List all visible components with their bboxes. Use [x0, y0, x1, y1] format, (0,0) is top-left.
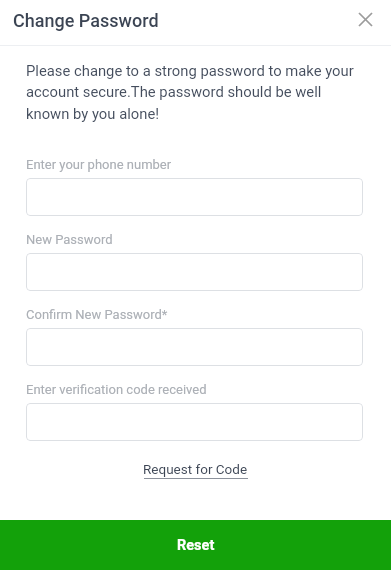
staticText: Confirm New Password*	[26, 307, 168, 322]
button[interactable]: Close	[350, 4, 380, 34]
staticText: Enter verification code received	[26, 382, 207, 397]
staticText: Change Password	[13, 10, 159, 31]
button[interactable]	[26, 328, 363, 366]
button[interactable]	[26, 403, 363, 441]
staticText: Enter your phone number	[26, 157, 172, 172]
button[interactable]	[26, 178, 363, 216]
button[interactable]: Request for Code	[142, 461, 249, 479]
staticText: Request for Code	[143, 461, 248, 477]
staticText: New Password	[26, 232, 113, 247]
button[interactable]	[26, 253, 363, 291]
staticText: Reset	[177, 537, 215, 554]
button[interactable]: Reset	[0, 520, 391, 570]
staticText: Please change to a strong password to ma…	[26, 62, 354, 123]
